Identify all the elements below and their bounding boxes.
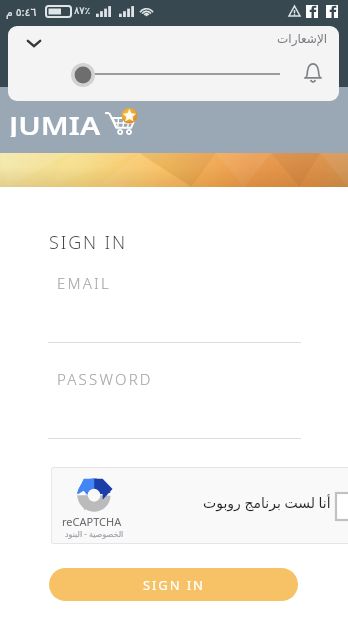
button[interactable]: Collapse notifications <box>23 32 45 54</box>
staticText: SIGN IN <box>143 576 205 594</box>
staticText: أنا لست برنامج روبوت <box>203 493 331 512</box>
staticText: الخصوصية - البنود <box>65 528 124 539</box>
staticText: ٨٧٪ <box>74 5 91 17</box>
staticText: reCAPTCHA <box>62 514 122 529</box>
staticText: ٥:٤٦ م <box>6 4 37 19</box>
button[interactable]: Notifications <box>300 60 326 86</box>
staticText: PASSWORD <box>57 369 153 389</box>
button[interactable]: SIGN IN <box>49 568 298 601</box>
staticText: SIGN IN <box>49 230 127 255</box>
staticText: الإشعارات <box>277 32 328 46</box>
staticText: EMAIL <box>57 273 111 293</box>
button[interactable]: Brightness slider <box>71 63 95 87</box>
staticText: JUMIA <box>9 107 101 137</box>
button[interactable]: I'm not a robot checkbox <box>336 493 348 520</box>
button[interactable]: reCAPTCHA <box>51 467 348 544</box>
